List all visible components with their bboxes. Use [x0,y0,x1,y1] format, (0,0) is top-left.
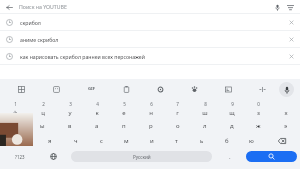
button[interactable]: Back [3,1,15,13]
button[interactable]: Remove suggestion [284,15,298,29]
staticText: й [13,109,17,117]
button[interactable]: ф [2,119,28,132]
staticText: т [175,137,178,145]
button[interactable]: х [273,100,298,117]
button[interactable]: 9 [219,100,244,117]
staticText: л [203,122,207,130]
button[interactable]: э [273,119,298,132]
staticText: н [149,109,153,117]
button[interactable]: 5 [111,100,136,117]
button[interactable]: Поиск на YOUTUBE [19,0,271,13]
button[interactable]: я [38,134,62,147]
staticText: . [229,153,231,161]
button[interactable]: как нарисовать скрибол раннеи всех персо… [0,48,300,64]
button[interactable]: м [115,134,138,147]
staticText: п [122,122,126,130]
button[interactable]: с [90,134,113,147]
button[interactable]: Filters [284,1,296,13]
staticText: ы [40,122,45,130]
button[interactable]: Text editing [245,80,279,98]
button[interactable]: Translate [211,80,245,98]
staticText: 5 [123,101,126,107]
staticText: к [95,109,99,117]
button[interactable]: ?123 [3,149,37,164]
staticText: х [284,109,288,117]
staticText: ж [256,122,261,130]
staticText: 8 [204,101,207,107]
button[interactable]: ь [190,134,213,147]
button[interactable]: 0 [246,100,271,117]
staticText: 9 [231,101,234,107]
button[interactable]: Shift [2,134,36,147]
button[interactable]: 6 [138,100,163,117]
button[interactable]: Backspace [265,134,298,147]
button[interactable]: Emoji [177,80,211,98]
button[interactable]: Change language [39,149,68,164]
button[interactable]: д [219,119,244,132]
staticText: как нарисовать скрибол раннеи всех персо… [20,53,284,60]
staticText: щ [229,109,235,117]
staticText: в [68,122,72,130]
staticText: Русский [133,154,151,160]
staticText: р [149,122,153,130]
staticText: з [257,109,260,117]
button[interactable]: р [138,119,163,132]
staticText: я [48,137,52,145]
staticText: а [95,122,99,130]
staticText: ч [74,137,78,145]
staticText: э [284,122,287,130]
button[interactable]: Voice input [279,82,294,97]
staticText: г [176,109,179,117]
button[interactable]: скрибол [0,14,300,30]
button[interactable]: и [140,134,163,147]
staticText: 7 [176,101,179,107]
staticText: ш [202,109,208,117]
button[interactable]: 2 [30,100,55,117]
staticText: ю [249,137,254,145]
staticText: ?123 [15,154,25,160]
button[interactable]: ч [64,134,88,147]
staticText: б [225,137,229,145]
staticText: м [124,137,129,145]
button[interactable]: Search [246,151,297,162]
staticText: 4 [96,101,99,107]
button[interactable]: ж [246,119,271,132]
button[interactable]: Clipboard [109,80,143,98]
staticText: д [230,122,234,130]
button[interactable]: п [111,119,136,132]
staticText: ф [13,122,18,130]
staticText: и [150,137,154,145]
button[interactable]: Sticker [39,80,74,98]
button[interactable]: Grid [4,80,39,98]
staticText: с [100,137,103,145]
button[interactable]: 4 [84,100,109,117]
button[interactable]: GIF [74,80,109,98]
button[interactable]: 1 [2,100,28,117]
button[interactable]: б [215,134,238,147]
staticText: ь [200,137,204,145]
button[interactable]: 3 [57,100,82,117]
button[interactable]: ю [240,134,263,147]
button[interactable]: 7 [165,100,190,117]
button[interactable]: 8 [192,100,217,117]
staticText: аниме скрибол [20,36,284,43]
staticText: 2 [42,101,45,107]
staticText: Поиск на YOUTUBE [19,3,67,10]
button[interactable]: о [165,119,190,132]
button[interactable]: Remove suggestion [284,32,298,46]
button[interactable]: Space [71,151,212,162]
button[interactable]: в [57,119,82,132]
button[interactable]: Remove suggestion [284,49,298,63]
button[interactable]: аниме скрибол [0,31,300,47]
button[interactable]: т [165,134,188,147]
button[interactable]: л [192,119,217,132]
staticText: 0 [257,101,260,107]
staticText: скрибол [20,19,284,26]
button[interactable]: Settings [143,80,177,98]
button[interactable]: а [84,119,109,132]
button[interactable]: Voice search [271,1,283,13]
button[interactable]: Image preview [0,113,33,146]
staticText: 1 [14,101,17,107]
button[interactable]: ы [30,119,55,132]
